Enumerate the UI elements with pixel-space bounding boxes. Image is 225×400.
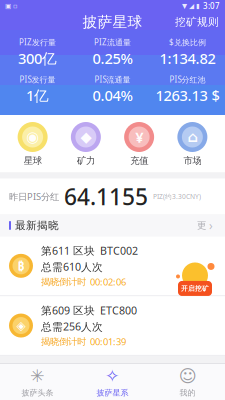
staticText: › (209, 217, 213, 233)
button[interactable]: 开启挖矿 (173, 258, 217, 302)
staticText: 我的 (179, 388, 195, 398)
staticText: ☺ (178, 366, 196, 386)
staticText: 揭晓倒计时 (41, 276, 86, 288)
staticText: 第611 区块 (41, 243, 95, 258)
staticText: 00:01:39 (90, 335, 126, 348)
staticText: ◈ (16, 319, 25, 332)
staticText: 1:134.82 (159, 48, 215, 68)
staticText: 充值 (130, 155, 148, 166)
button[interactable]: ₿ (0, 236, 225, 295)
staticText: 最新揭晓 (15, 219, 59, 232)
staticText: 矿力 (77, 155, 95, 166)
button[interactable]: ☺ (150, 364, 225, 400)
button[interactable]: ¥ (112, 122, 166, 166)
staticText: PIS分红池 (169, 74, 205, 85)
staticText: 1263.13 $ (155, 86, 219, 105)
button[interactable]: 挖矿规则 (169, 11, 225, 32)
button[interactable]: ◆ (59, 122, 112, 166)
staticText: 昨日PIS分红 (9, 190, 59, 203)
staticText: 0.25% (92, 48, 132, 68)
staticText: ETC800 (100, 303, 137, 317)
staticText: 披萨头条 (21, 388, 53, 398)
staticText: ▼ ◢ ▮ (182, 2, 200, 10)
button[interactable]: ⌂ (166, 122, 219, 166)
staticText: 总需256人次 (41, 319, 103, 334)
staticText: PIS流通量 (94, 74, 130, 85)
staticText: 揭晓倒计时 (41, 336, 86, 347)
staticText: ⌂ (187, 129, 197, 145)
staticText: 3:07 (203, 1, 220, 11)
staticText: 市场 (183, 155, 201, 166)
staticText: 0.04% (92, 86, 132, 105)
staticText: 披萨星球 (82, 13, 142, 31)
staticText: 星球 (24, 155, 42, 166)
staticText: 第609 区块 (41, 303, 95, 317)
staticText: PIZ发行量 (19, 37, 56, 48)
staticText: 总需610人次 (41, 260, 103, 274)
staticText: 00:02:06 (90, 276, 126, 288)
staticText: PIZ(约3.30CNY) (153, 192, 201, 201)
staticText: 64.1155 (64, 181, 148, 211)
staticText: PIS发行量 (19, 74, 55, 85)
staticText: ¥ (135, 127, 143, 147)
staticText: PIZ流通量 (94, 37, 131, 48)
staticText: 开启挖矿 (181, 284, 209, 293)
staticText: BTC002 (100, 243, 138, 258)
staticText: ₿ (17, 258, 24, 274)
button[interactable]: ✧ (75, 364, 150, 400)
button[interactable]: ◉ (6, 122, 59, 166)
staticText: 挖矿规则 (175, 15, 219, 28)
staticText: 更 (197, 220, 206, 231)
staticText: 300亿 (18, 48, 57, 68)
staticText: 1亿 (26, 86, 49, 105)
staticText: ◆ (80, 129, 91, 145)
staticText: 披萨星系 (96, 388, 128, 398)
staticText: ✧ (105, 366, 120, 386)
button[interactable]: ✳ (0, 364, 75, 400)
staticText: ✳ (30, 366, 45, 386)
staticText: $兑换比例 (169, 37, 206, 47)
button[interactable]: 更 (194, 213, 216, 237)
staticText: ▣ ▫ (5, 2, 18, 10)
button[interactable]: ◈ (0, 296, 225, 355)
staticText: ◉ (26, 129, 39, 145)
